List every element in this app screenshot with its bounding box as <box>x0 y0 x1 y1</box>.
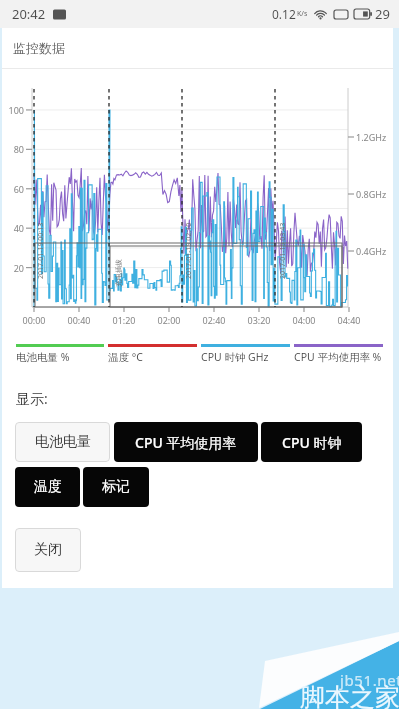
button[interactable]: CPU 时钟 <box>261 422 362 462</box>
staticText: 100 <box>2 104 24 116</box>
staticText: 标记 <box>102 478 130 496</box>
staticText: 20:42 <box>12 5 46 23</box>
staticText: 温度 <box>34 478 62 496</box>
staticText: CPU 平均使用率 <box>135 433 237 452</box>
staticText: CPU 时钟 GHz <box>201 350 269 364</box>
staticText: 监控数据 <box>13 40 65 56</box>
staticText: 01:20 <box>109 314 139 326</box>
staticText: K/s <box>297 9 308 19</box>
staticText: 80 <box>2 143 24 155</box>
staticText: 03:20 <box>244 314 274 326</box>
staticText: 04:40 <box>334 314 364 326</box>
staticText: 04:00 <box>289 314 319 326</box>
staticText: 0.8GHz <box>356 188 387 200</box>
staticText: 2017-01-19 00:13 <box>36 222 46 279</box>
staticText: 关闭 <box>34 541 62 559</box>
staticText: 00:00 <box>19 314 49 326</box>
staticText: 1.2GHz <box>356 131 387 143</box>
staticText: 40 <box>2 222 24 234</box>
staticText: 充电插拔 <box>114 259 123 287</box>
staticText: 0.4GHz <box>356 245 387 257</box>
staticText: 00:40 <box>64 314 94 326</box>
staticText: jb51.net <box>340 670 399 690</box>
staticText: 29 <box>375 5 390 23</box>
button[interactable]: CPU 平均使用率 <box>114 422 258 462</box>
button[interactable]: 关闭 <box>15 528 81 572</box>
staticText: 温度 °C <box>108 350 143 364</box>
staticText: 电池电量 % <box>16 350 70 364</box>
button[interactable]: 电池电量 <box>15 422 110 462</box>
staticText: 60 <box>2 183 24 195</box>
staticText: CPU 时钟 <box>282 433 342 452</box>
button[interactable]: 温度 <box>15 467 80 507</box>
staticText: 2017-01-19 03:43 <box>278 222 288 279</box>
staticText: 脚本之家 <box>300 682 399 709</box>
staticText: 02:40 <box>199 314 229 326</box>
staticText: 电池电量 <box>35 433 91 451</box>
staticText: 20 <box>2 262 24 274</box>
staticText: CPU 平均使用率 % <box>294 350 382 364</box>
staticText: 02:00 <box>154 314 184 326</box>
staticText: 2017-01-19 02:10 <box>184 222 194 279</box>
staticText: 显示: <box>16 389 48 408</box>
button[interactable]: 标记 <box>83 467 149 507</box>
staticText: 0.12 <box>272 6 296 22</box>
